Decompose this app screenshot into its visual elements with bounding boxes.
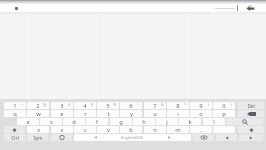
staticText: p bbox=[222, 110, 226, 117]
button[interactable]: q bbox=[4, 110, 26, 117]
button[interactable]: Shift bbox=[238, 126, 264, 133]
button[interactable]: m bbox=[167, 126, 189, 133]
button[interactable]: e bbox=[51, 110, 73, 117]
button[interactable]: Space bbox=[74, 134, 191, 141]
staticText: g bbox=[119, 118, 123, 125]
staticText: # bbox=[68, 102, 71, 107]
button[interactable]: Backspace bbox=[238, 110, 264, 117]
button[interactable]: c bbox=[74, 126, 96, 133]
staticText: j bbox=[166, 118, 168, 125]
staticText: b bbox=[129, 126, 133, 133]
button[interactable]: s bbox=[40, 118, 62, 125]
button[interactable]: Sym bbox=[27, 134, 48, 141]
staticText: y bbox=[130, 110, 133, 117]
staticText: x bbox=[60, 126, 64, 133]
button[interactable]: j bbox=[156, 118, 178, 125]
button[interactable]: i bbox=[167, 110, 189, 117]
button[interactable]: 0 bbox=[213, 102, 235, 109]
staticText: , bbox=[200, 126, 202, 133]
button[interactable]: l bbox=[203, 118, 225, 125]
button[interactable]: Emoji bbox=[51, 134, 72, 141]
button[interactable]: f bbox=[86, 118, 108, 125]
staticText: u bbox=[153, 110, 157, 117]
button[interactable]: 6 bbox=[120, 102, 142, 109]
button[interactable]: Search bbox=[226, 118, 263, 125]
staticText: English(US) bbox=[121, 135, 144, 141]
button[interactable]: d bbox=[63, 118, 85, 125]
staticText: % bbox=[113, 102, 117, 107]
staticText: q bbox=[13, 110, 17, 117]
staticText: 1 bbox=[13, 102, 17, 109]
staticText: z bbox=[37, 126, 40, 133]
button[interactable]: u bbox=[144, 110, 166, 117]
button[interactable]: Cursor left bbox=[216, 134, 237, 141]
staticText: 3 bbox=[60, 102, 64, 109]
staticText: 6 bbox=[129, 102, 133, 109]
staticText: r bbox=[84, 110, 87, 117]
staticText: & bbox=[161, 102, 164, 107]
button[interactable]: Del bbox=[238, 102, 264, 109]
button[interactable]: n bbox=[144, 126, 166, 133]
staticText: k bbox=[188, 118, 192, 125]
staticText: Ctrl bbox=[11, 135, 19, 141]
staticText: 5 bbox=[106, 102, 110, 109]
button[interactable]: Navigate up bbox=[11, 5, 21, 12]
staticText: e bbox=[60, 110, 64, 117]
button[interactable]: 4 bbox=[74, 102, 96, 109]
staticText: Del bbox=[247, 103, 255, 109]
button[interactable]: 7 bbox=[144, 102, 166, 109]
staticText: n bbox=[153, 126, 157, 133]
button[interactable]: 1 bbox=[4, 102, 26, 109]
button[interactable]: w bbox=[27, 110, 49, 117]
staticText: h bbox=[142, 118, 146, 125]
button[interactable]: 9 bbox=[190, 102, 212, 109]
button[interactable]: t bbox=[97, 110, 119, 117]
button[interactable]: z bbox=[27, 126, 49, 133]
staticText: c bbox=[84, 126, 87, 133]
staticText: i bbox=[177, 110, 179, 117]
button[interactable]: 8 bbox=[167, 102, 189, 109]
button[interactable]: x bbox=[51, 126, 73, 133]
button[interactable]: b bbox=[120, 126, 142, 133]
button[interactable]: Ctrl bbox=[4, 134, 25, 141]
staticText: a bbox=[26, 118, 30, 125]
button[interactable]: h bbox=[133, 118, 155, 125]
button[interactable]: k bbox=[179, 118, 201, 125]
button[interactable]: Shift bbox=[4, 126, 25, 133]
staticText: 9 bbox=[199, 102, 203, 109]
staticText: ) bbox=[231, 102, 233, 107]
button[interactable]: g bbox=[110, 118, 132, 125]
staticText: Sym bbox=[33, 135, 43, 141]
button[interactable]: Search bbox=[243, 4, 257, 12]
staticText: ( bbox=[208, 102, 210, 107]
button[interactable]: . bbox=[213, 126, 235, 133]
button[interactable]: v bbox=[97, 126, 119, 133]
staticText: 4 bbox=[83, 102, 87, 109]
button[interactable]: p bbox=[213, 110, 235, 117]
staticText: m bbox=[175, 126, 181, 133]
staticText: ~ bbox=[21, 102, 24, 107]
button[interactable]: , bbox=[190, 126, 212, 133]
button[interactable]: y bbox=[120, 110, 142, 117]
staticText: w bbox=[36, 110, 41, 117]
button[interactable]: 3 bbox=[51, 102, 73, 109]
button[interactable]: o bbox=[190, 110, 212, 117]
staticText: v bbox=[107, 126, 110, 133]
staticText: $ bbox=[91, 102, 94, 107]
staticText: f bbox=[96, 118, 98, 125]
staticText: * bbox=[184, 102, 187, 107]
staticText: 0 bbox=[222, 102, 226, 109]
staticText: l bbox=[213, 118, 215, 125]
button[interactable]: Cursor right bbox=[239, 134, 263, 141]
staticText: @ bbox=[43, 102, 47, 107]
button[interactable]: Keyboard settings bbox=[193, 134, 214, 141]
button[interactable]: a bbox=[17, 118, 39, 125]
staticText: t bbox=[107, 110, 110, 117]
button[interactable]: r bbox=[74, 110, 96, 117]
staticText: 2 bbox=[36, 102, 40, 109]
staticText: s bbox=[50, 118, 53, 125]
button[interactable]: 2 bbox=[27, 102, 49, 109]
staticText: 8 bbox=[176, 102, 180, 109]
staticText: o bbox=[199, 110, 203, 117]
button[interactable]: 5 bbox=[97, 102, 119, 109]
